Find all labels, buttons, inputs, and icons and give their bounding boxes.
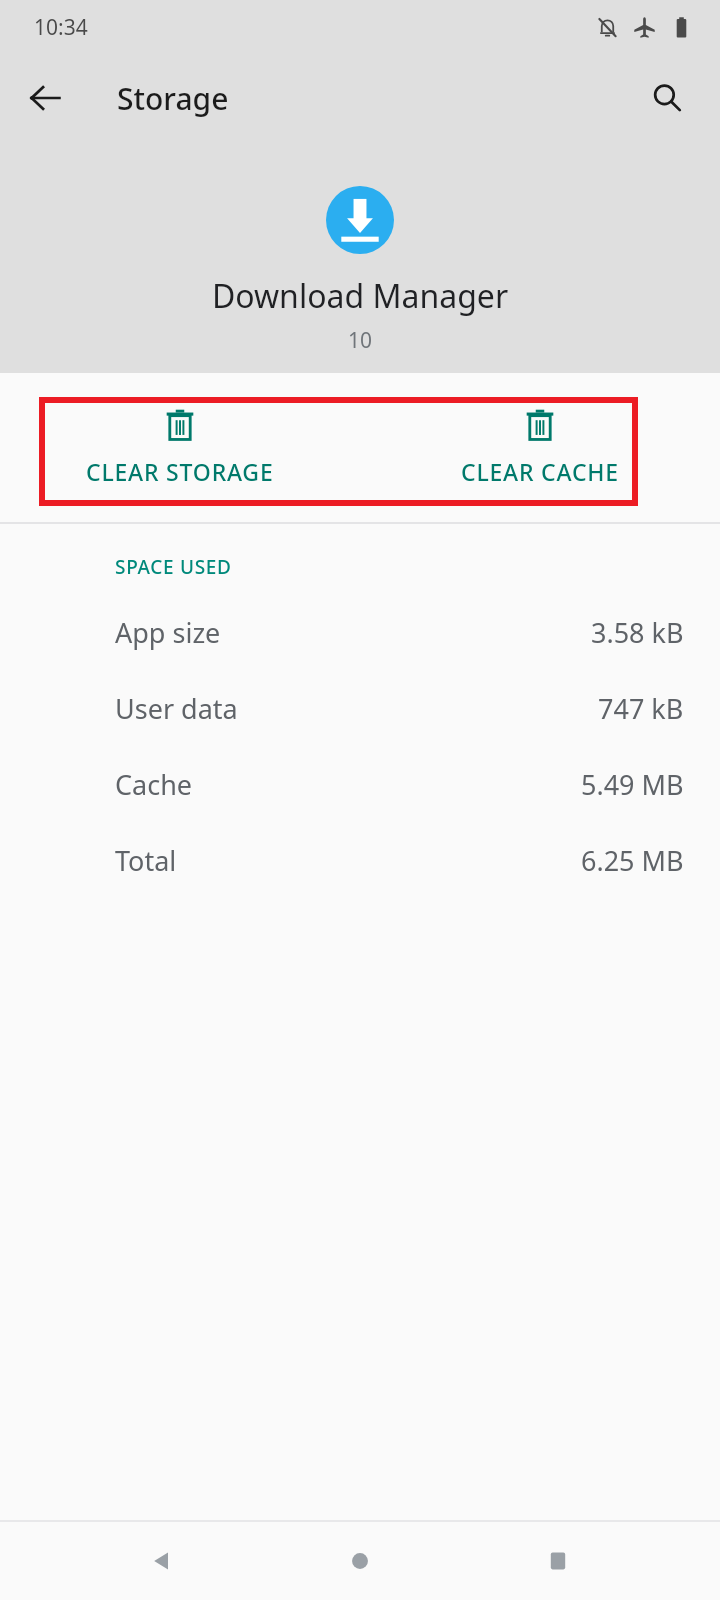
button[interactable]: CLEAR CACHE xyxy=(360,373,720,522)
staticText: 10:34 xyxy=(34,13,88,42)
staticText: User data xyxy=(115,690,238,727)
staticText: 5.49 MB xyxy=(581,766,684,803)
button[interactable]: App size xyxy=(0,594,720,670)
button[interactable]: CLEAR STORAGE xyxy=(0,373,360,522)
staticText: SPACE USED xyxy=(115,554,232,580)
button[interactable]: Search xyxy=(635,66,699,130)
staticText: Cache xyxy=(115,766,193,803)
button[interactable]: User data xyxy=(0,670,720,746)
staticText: CLEAR CACHE xyxy=(461,456,619,487)
staticText: CLEAR STORAGE xyxy=(86,456,274,487)
staticText: 6.25 MB xyxy=(581,842,684,879)
button[interactable]: Total xyxy=(0,822,720,898)
staticText: Storage xyxy=(117,78,229,119)
button[interactable]: Cache xyxy=(0,746,720,822)
staticText: App size xyxy=(115,614,221,651)
button[interactable]: Home xyxy=(324,1525,396,1597)
staticText: Total xyxy=(115,842,177,879)
button[interactable]: Recent apps xyxy=(522,1525,594,1597)
staticText: 3.58 kB xyxy=(591,614,684,651)
staticText: 747 kB xyxy=(598,690,684,727)
button[interactable]: Back xyxy=(13,66,77,130)
staticText: 10 xyxy=(0,326,720,355)
staticText: Download Manager xyxy=(0,274,720,318)
button[interactable]: Back xyxy=(126,1525,198,1597)
